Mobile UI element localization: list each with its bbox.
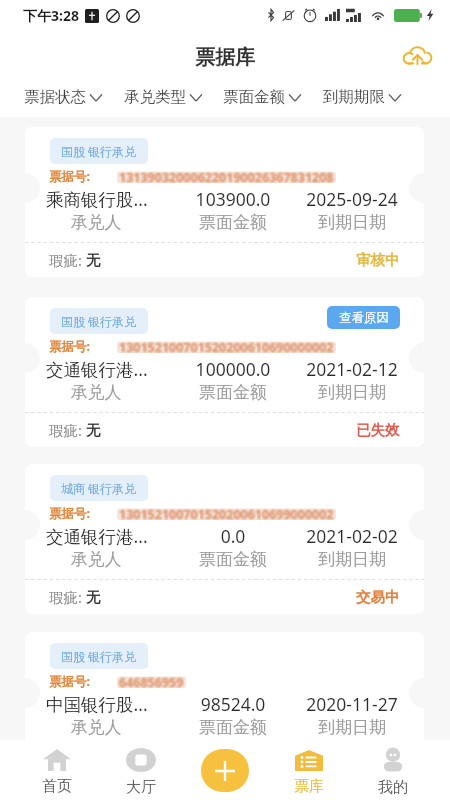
staticText: 646856959 (120, 673, 185, 690)
staticText: 130152100701520200610699000002 (120, 505, 335, 522)
staticText: 票据号: (49, 338, 91, 355)
staticText: 国股 银行承兑 (61, 313, 137, 329)
staticText: 130152100701520200610690000002 (119, 340, 334, 357)
staticText: 646856959 (120, 673, 185, 690)
staticText: 646856959 (119, 673, 184, 690)
staticText: 131390320006220190026367831208 (119, 168, 334, 185)
staticText: 票面金额 (223, 87, 285, 107)
staticText: 131390320006220190026367831208 (120, 169, 335, 186)
button[interactable]: 票库 (267, 740, 351, 800)
staticText: 2020-11-27 (262, 692, 424, 716)
staticText: 100000.0 (143, 357, 323, 381)
staticText: 票据库 (195, 45, 255, 70)
staticText: 中国银行股... (46, 692, 148, 716)
staticText: 131390320006220190026367831208 (118, 168, 333, 185)
button[interactable]: 到期期限 (323, 87, 402, 107)
staticText: 646856959 (120, 675, 185, 692)
staticText: 票面金额 (143, 382, 323, 403)
button[interactable]: 大厅 (99, 740, 183, 800)
staticText: 130152100701520200610699000002 (118, 505, 333, 522)
staticText: 到期日期 (262, 212, 424, 233)
staticText: 承兑人 (25, 212, 186, 233)
staticText: 130152100701520200610690000002 (120, 338, 335, 355)
staticText: 646856959 (118, 674, 183, 691)
staticText: 130152100701520200610699000002 (118, 507, 333, 524)
staticText: 瑕疵: (49, 420, 86, 440)
button[interactable]: 票面金额 (223, 87, 302, 107)
staticText: 0.0 (143, 524, 323, 548)
staticText: 130152100701520200610690000002 (118, 339, 333, 356)
staticText: 2025-09-24 (262, 187, 424, 211)
staticText: 2021-02-02 (262, 524, 424, 548)
staticText: 646856959 (120, 674, 185, 691)
staticText: 98524.0 (143, 692, 323, 716)
staticText: 乘商银行股... (46, 187, 148, 211)
button[interactable]: 国股 银行承兑 (25, 127, 424, 277)
staticText: 131390320006220190026367831208 (118, 169, 333, 186)
staticText: 城商 银行承兑 (61, 480, 137, 496)
button[interactable]: 票据状态 (24, 87, 103, 107)
staticText: 646856959 (118, 674, 183, 691)
staticText: 瑕疵: (49, 755, 86, 775)
button[interactable]: 承兑类型 (124, 87, 203, 107)
staticText: 下午3:28 (23, 6, 79, 25)
staticText: 票面金额 (143, 549, 323, 570)
staticText: 646856959 (118, 673, 183, 690)
staticText: 承兑人 (25, 549, 186, 570)
staticText: 我的 (378, 778, 408, 797)
button[interactable]: 查看原因 (327, 306, 400, 329)
staticText: 131390320006220190026367831208 (119, 169, 334, 186)
button[interactable]: 城商 银行承兑 (25, 464, 424, 614)
staticText: 130152100701520200610690000002 (119, 338, 334, 355)
button[interactable]: Upload to cloud (399, 37, 433, 71)
staticText: 130152100701520200610690000002 (118, 338, 333, 355)
staticText: 审核中 (356, 756, 400, 774)
staticText: 130152100701520200610690000002 (120, 339, 335, 356)
staticText: 131390320006220190026367831208 (120, 170, 335, 187)
staticText: 646856959 (118, 673, 183, 690)
staticText: 130152100701520200610699000002 (118, 506, 333, 523)
staticText: 131390320006220190026367831208 (120, 169, 335, 186)
staticText: 131390320006220190026367831208 (120, 170, 335, 187)
staticText: 瑕疵: (49, 587, 86, 607)
staticText: 交易中 (356, 588, 400, 606)
staticText: 130152100701520200610699000002 (118, 507, 333, 524)
button[interactable]: 首页 (15, 740, 99, 800)
staticText: 130152100701520200610690000002 (120, 340, 335, 357)
staticText: 130152100701520200610699000002 (119, 507, 334, 524)
staticText: 130152100701520200610699000002 (118, 506, 333, 523)
button[interactable]: 国股 银行承兑 (25, 297, 424, 447)
staticText: 到期日期 (262, 382, 424, 403)
staticText: 到期日期 (262, 717, 424, 738)
staticText: 646856959 (120, 675, 185, 692)
staticText: 无 (86, 251, 101, 269)
staticText: 131390320006220190026367831208 (118, 170, 333, 187)
staticText: 130152100701520200610699000002 (120, 506, 335, 523)
staticText: 646856959 (119, 674, 184, 691)
staticText: 票据号: (49, 673, 91, 690)
staticText: 130152100701520200610690000002 (118, 339, 333, 356)
staticText: 票据号: (49, 168, 91, 185)
button[interactable]: 国股 银行承兑 (25, 632, 424, 782)
staticText: 646856959 (118, 675, 183, 692)
button[interactable]: 我的 (351, 740, 435, 800)
staticText: 130152100701520200610690000002 (118, 340, 333, 357)
staticText: 130152100701520200610699000002 (120, 507, 335, 524)
staticText: 131390320006220190026367831208 (120, 168, 335, 185)
staticText: 130152100701520200610690000002 (118, 340, 333, 357)
staticText: 130152100701520200610690000002 (120, 338, 335, 355)
staticText: 查看原因 (339, 310, 389, 326)
staticText: 130152100701520200610690000002 (120, 339, 335, 356)
staticText: 国股 银行承兑 (61, 648, 137, 664)
staticText: 646856959 (120, 674, 185, 691)
staticText: 交通银行港... (46, 524, 148, 548)
button[interactable]: Add (201, 749, 249, 792)
staticText: 646856959 (119, 675, 184, 692)
staticText: 130152100701520200610699000002 (120, 505, 335, 522)
staticText: 大厅 (126, 778, 156, 797)
staticText: 无 (86, 588, 101, 606)
staticText: 已失效 (356, 421, 400, 439)
staticText: 票面金额 (143, 717, 323, 738)
staticText: 131390320006220190026367831208 (120, 168, 335, 185)
